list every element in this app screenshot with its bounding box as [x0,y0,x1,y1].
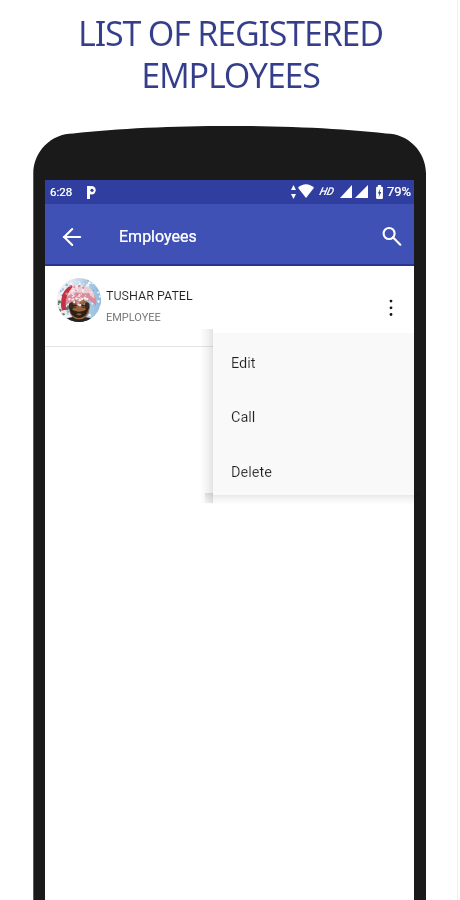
staticText: HD [319,185,333,197]
staticText: EMPLOYEE [106,311,161,324]
button[interactable]: Search [371,217,407,253]
staticText: Employees [119,227,197,246]
staticText: Call [231,409,256,426]
button[interactable]: Back [54,219,90,255]
staticText: Delete [231,464,272,481]
staticText: Edit [231,355,256,372]
button[interactable]: Delete [213,445,414,499]
staticText: TUSHAR PATEL [106,288,193,303]
button[interactable]: TUSHAR PATEL [45,266,414,346]
button[interactable]: More options [373,290,409,326]
button[interactable]: Edit [213,336,414,390]
staticText: LIST OF REGISTERED EMPLOYEES [78,10,383,98]
button[interactable]: Call [213,390,414,444]
staticText: 6:28 [50,185,73,198]
staticText: 79% [387,184,412,199]
